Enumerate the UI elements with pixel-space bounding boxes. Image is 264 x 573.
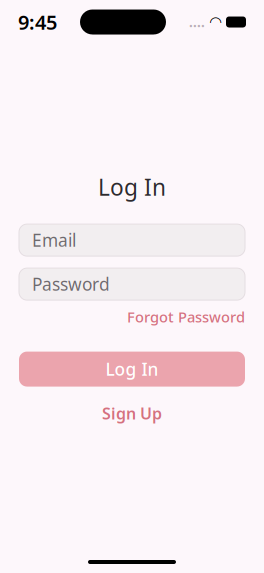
button[interactable]: Log In <box>19 352 245 387</box>
staticText: 9:45 <box>18 9 57 35</box>
button[interactable]: Email <box>19 224 245 256</box>
staticText: Log In <box>98 172 166 202</box>
staticText: Email <box>32 229 76 252</box>
button[interactable]: Password <box>19 268 245 300</box>
staticText: Log In <box>105 358 158 381</box>
staticText: Forgot Password <box>127 307 245 327</box>
staticText: .... <box>189 13 205 31</box>
staticText: Password <box>32 273 110 296</box>
staticText: ◠ <box>210 14 221 30</box>
staticText: Sign Up <box>102 403 162 424</box>
button[interactable]: Sign Up <box>102 403 162 424</box>
button[interactable]: Forgot Password <box>127 307 245 327</box>
